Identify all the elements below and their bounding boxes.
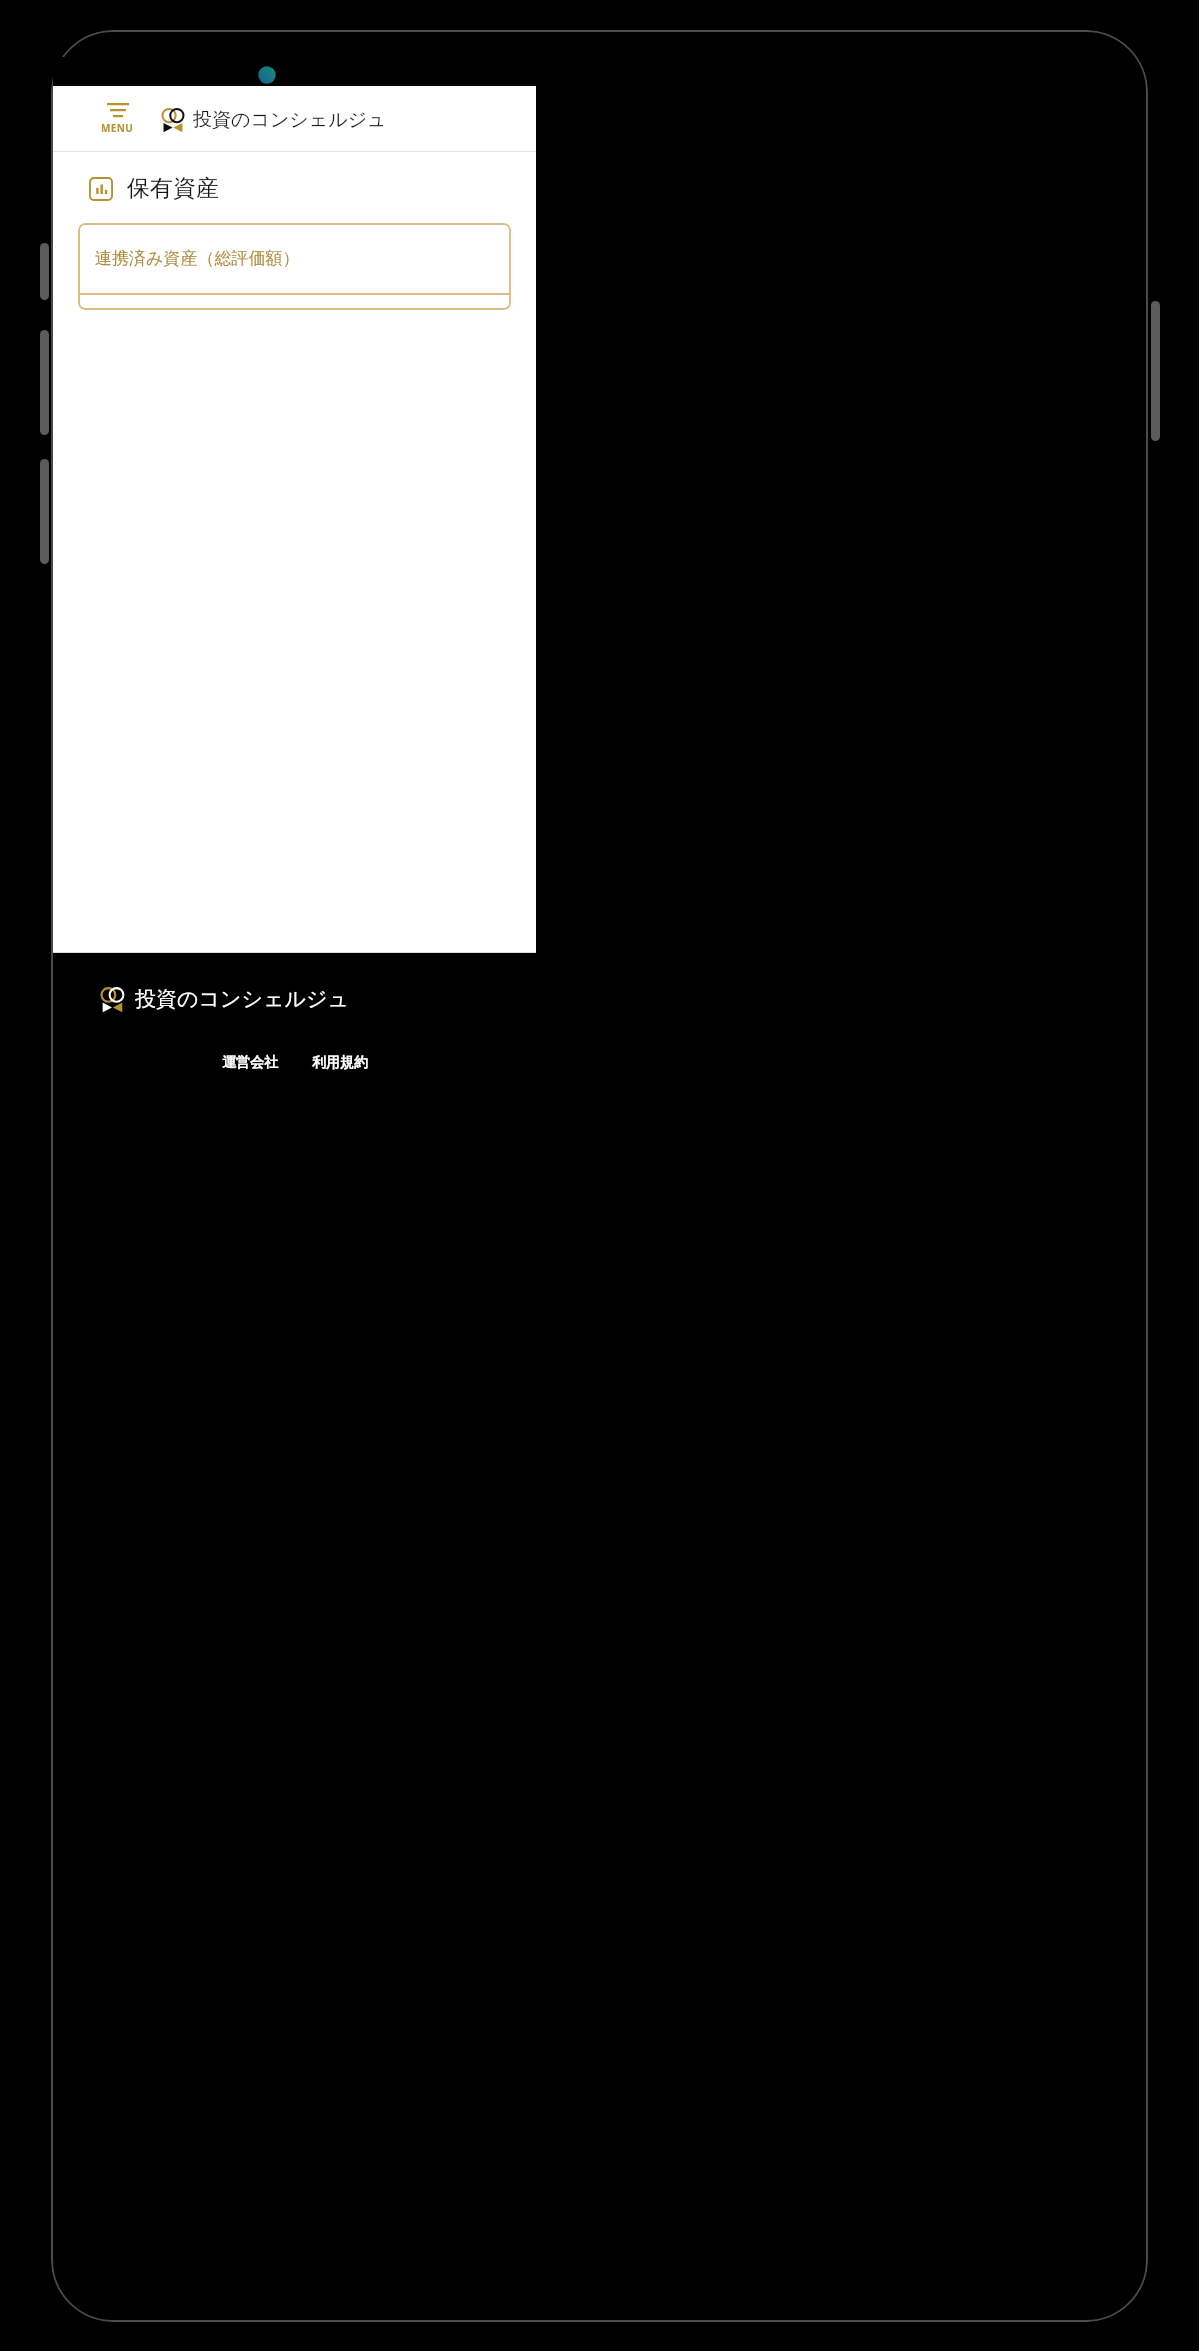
staticText: 投資のコンシェルジュ [135,986,349,1012]
button[interactable]: 利用規約 [295,1051,385,1075]
staticText: MENU [101,121,134,135]
button[interactable]: 運営会社 [205,1051,295,1075]
staticText: 利用規約 [312,1054,368,1072]
button[interactable]: 連携済み資産（総評価額） [78,223,511,310]
staticText: 運営会社 [222,1054,278,1072]
staticText: 連携済み資産（総評価額） [95,248,300,269]
button[interactable]: 投資のコンシェルジュ [99,985,536,1013]
staticText: 投資のコンシェルジュ [193,108,387,132]
staticText: 保有資産 [127,174,219,203]
button[interactable]: 投資のコンシェルジュ [160,106,387,133]
button[interactable]: 保有資産 [89,174,536,203]
button[interactable]: Menu [97,101,138,137]
